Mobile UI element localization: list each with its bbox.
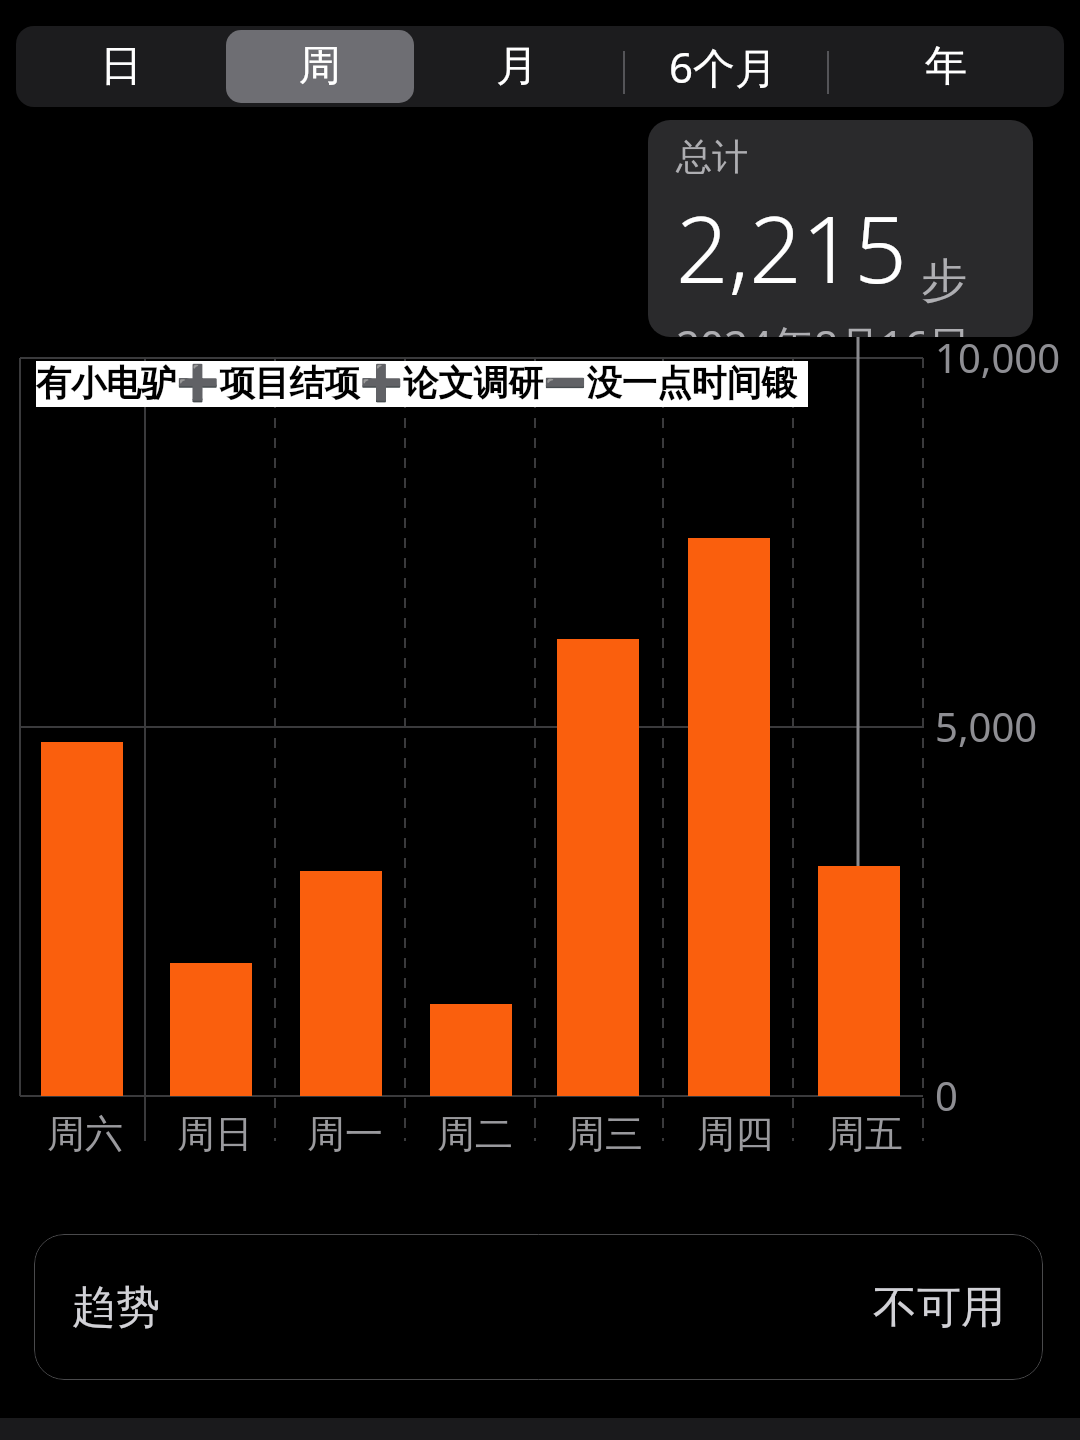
staticText: 周二 bbox=[437, 1110, 513, 1158]
staticText: 年 bbox=[925, 40, 967, 93]
staticText: 不可用 bbox=[873, 1280, 1005, 1335]
staticText: 总计 bbox=[676, 134, 748, 179]
staticText: 2024年8月16日 bbox=[676, 316, 971, 337]
staticText: 10,000 bbox=[935, 330, 1061, 384]
button[interactable]: 6个月 bbox=[619, 26, 827, 107]
button[interactable]: 总计 bbox=[648, 120, 1033, 337]
staticText: 月 bbox=[496, 40, 538, 93]
staticText: 6个月 bbox=[669, 38, 778, 95]
staticText: 周日 bbox=[177, 1110, 253, 1158]
button[interactable]: 趋势 bbox=[34, 1234, 1043, 1380]
staticText: 2,215 bbox=[676, 185, 907, 310]
staticText: 趋势 bbox=[72, 1280, 160, 1335]
staticText: 周三 bbox=[567, 1110, 643, 1158]
staticText: 周四 bbox=[697, 1110, 773, 1158]
staticText: 周五 bbox=[827, 1110, 903, 1158]
staticText: 有小电驴➕项目结项➕论文调研➖没一点时间锻炼 bbox=[36, 361, 808, 407]
staticText: 周一 bbox=[307, 1110, 383, 1158]
staticText: 日 bbox=[100, 40, 142, 93]
staticText: 0 bbox=[935, 1068, 958, 1122]
staticText: 5,000 bbox=[935, 699, 1038, 753]
button[interactable]: 年 bbox=[827, 26, 1064, 107]
staticText: 周 bbox=[299, 40, 341, 93]
staticText: 步 bbox=[921, 252, 967, 310]
button[interactable]: 日 bbox=[16, 26, 226, 107]
button[interactable]: 周 bbox=[226, 26, 414, 107]
button[interactable]: 月 bbox=[414, 26, 619, 107]
staticText: 周六 bbox=[47, 1110, 123, 1158]
